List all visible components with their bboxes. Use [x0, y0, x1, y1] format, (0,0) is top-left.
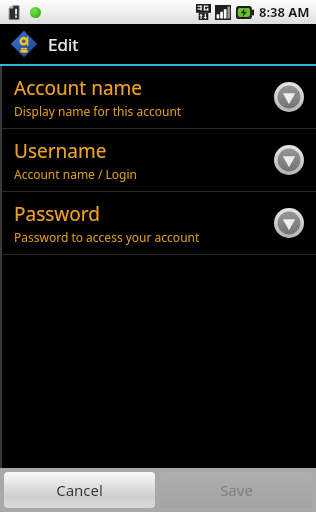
button[interactable]: Account name — [0, 66, 316, 128]
staticText: Save — [220, 480, 253, 500]
staticText: 8:38 AM — [259, 3, 310, 21]
staticText: Password to access your account — [14, 229, 200, 245]
staticText: Cancel — [56, 480, 103, 500]
staticText: Display name for this account — [14, 103, 182, 119]
staticText: Account name — [14, 75, 143, 101]
button[interactable]: Expand — [274, 82, 304, 112]
staticText: Account name / Login — [14, 166, 138, 182]
button[interactable]: Expand — [274, 145, 304, 175]
button[interactable]: Save — [160, 472, 312, 508]
staticText: Password — [14, 201, 100, 227]
button[interactable]: Expand — [274, 208, 304, 238]
button[interactable]: Password — [0, 192, 316, 254]
button[interactable]: Username — [0, 129, 316, 191]
staticText: Username — [14, 138, 107, 164]
button[interactable]: Cancel — [4, 472, 155, 508]
staticText: Edit — [48, 33, 79, 56]
